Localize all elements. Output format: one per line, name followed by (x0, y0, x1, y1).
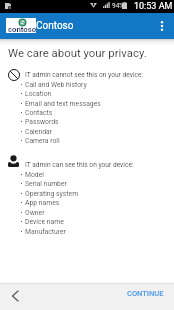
staticText: CONTINUE (127, 289, 164, 298)
staticText: Operating system (25, 190, 79, 198)
staticText: contoso (8, 25, 37, 34)
staticText: Model (25, 171, 44, 179)
staticText: Location (25, 90, 52, 98)
staticText: Manufacturer (25, 228, 66, 236)
staticText: IT admin can see this on your device: (25, 161, 134, 169)
staticText: Email and text messages (25, 100, 101, 108)
button[interactable]: CONTINUE (118, 284, 174, 305)
button[interactable]: More options (150, 14, 174, 38)
staticText: 10:53 AM (134, 1, 173, 12)
staticText: Serial number (25, 180, 67, 188)
staticText: Calendar (25, 128, 52, 136)
staticText: Device name (25, 218, 64, 226)
staticText: Contacts (25, 109, 53, 117)
staticText: IT admin cannot see this on your device: (25, 71, 144, 79)
staticText: App names (25, 199, 60, 207)
staticText: Call and Web history (25, 81, 87, 89)
button[interactable]: Back (4, 285, 26, 307)
staticText: We care about your privacy. (8, 46, 147, 59)
staticText: 94% (112, 2, 125, 10)
staticText: Owner (25, 209, 45, 217)
staticText: Camera roll (25, 137, 60, 145)
staticText: Passwords (25, 118, 59, 126)
staticText: Contoso (36, 20, 74, 32)
